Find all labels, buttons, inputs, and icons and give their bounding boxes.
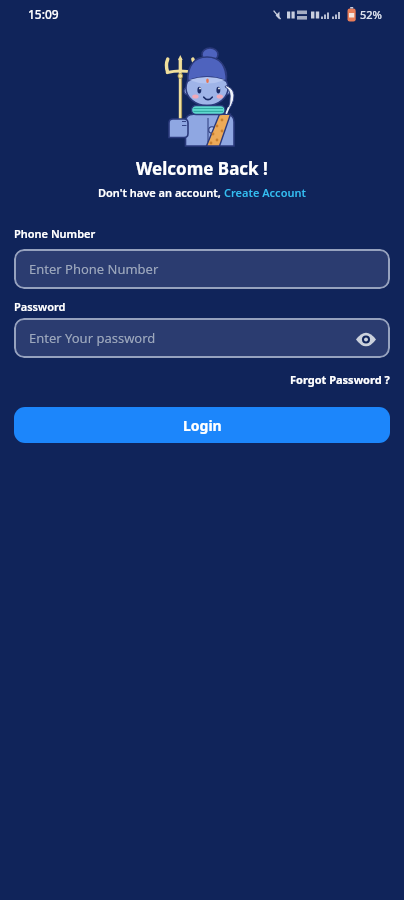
button[interactable]: Login — [14, 407, 390, 443]
staticText: Enter Your password — [29, 329, 156, 347]
staticText: 52% — [360, 7, 382, 22]
staticText: Phone Number — [14, 226, 96, 241]
staticText: Password — [14, 299, 66, 314]
button[interactable]: Forgot Password ? — [290, 372, 390, 387]
staticText: Don't have an account, — [98, 185, 224, 200]
button[interactable]: Create Account — [224, 185, 306, 200]
staticText: Login — [183, 416, 222, 435]
button[interactable]: Enter Your password — [14, 318, 390, 358]
staticText: Enter Phone Number — [29, 260, 159, 278]
button[interactable]: Enter Phone Number — [14, 249, 390, 289]
staticText: Welcome Back ! — [136, 157, 268, 180]
staticText: 15:09 — [28, 6, 59, 22]
